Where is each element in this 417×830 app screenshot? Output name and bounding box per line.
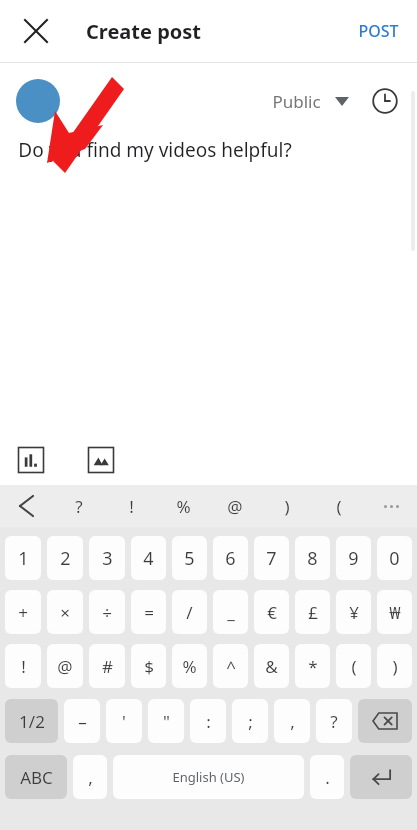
staticText: 4	[143, 546, 154, 571]
staticText: !	[21, 655, 26, 678]
button[interactable]: )	[261, 485, 313, 527]
staticText: ABC	[20, 766, 53, 789]
staticText: %	[176, 495, 191, 518]
staticText: )	[284, 495, 290, 518]
button[interactable]: =	[131, 590, 166, 634]
staticText: English (US)	[172, 768, 245, 786]
button[interactable]: ,	[274, 699, 310, 743]
button[interactable]: Backspace	[358, 699, 412, 743]
button[interactable]: 8	[295, 536, 330, 580]
staticText: 6	[225, 546, 236, 571]
button[interactable]: Schedule post	[365, 81, 405, 121]
button[interactable]: 5	[172, 536, 207, 580]
button[interactable]: *	[295, 644, 330, 688]
button[interactable]: "	[148, 699, 184, 743]
button[interactable]: )	[377, 644, 412, 688]
staticText: @	[57, 655, 73, 678]
button[interactable]: £	[295, 590, 330, 634]
staticText: !	[129, 495, 134, 518]
staticText: *	[308, 655, 318, 678]
button[interactable]: ÷	[89, 590, 125, 634]
staticText: )	[392, 655, 398, 678]
button[interactable]: ?	[316, 699, 352, 743]
button[interactable]: .	[310, 755, 344, 799]
staticText: €	[267, 601, 277, 624]
staticText: .	[325, 766, 330, 789]
staticText: 0	[389, 546, 400, 571]
button[interactable]: @	[209, 485, 261, 527]
button[interactable]: /	[172, 590, 207, 634]
button[interactable]: &	[254, 644, 289, 688]
staticText: '	[122, 710, 126, 733]
button[interactable]: More options	[365, 485, 417, 527]
staticText: ?	[75, 495, 83, 518]
staticText: ¥	[349, 601, 359, 624]
button[interactable]: 3	[89, 536, 125, 580]
staticText: $	[144, 655, 154, 678]
button[interactable]: 2	[47, 536, 83, 580]
button[interactable]: Enter	[350, 755, 412, 799]
button[interactable]: ^	[213, 644, 248, 688]
button[interactable]: ;	[232, 699, 268, 743]
staticText: 7	[266, 546, 277, 571]
staticText: 5	[184, 546, 195, 571]
button[interactable]: ₩	[377, 590, 412, 634]
staticText: –	[78, 710, 87, 733]
button[interactable]: 1/2	[5, 699, 58, 743]
staticText: _	[227, 601, 235, 624]
staticText: ^	[226, 655, 236, 678]
staticText: ₩	[389, 601, 401, 624]
button[interactable]: ¥	[336, 590, 371, 634]
button[interactable]: %	[157, 485, 209, 527]
button[interactable]: Previous suggestions	[0, 485, 53, 527]
staticText: ,	[88, 766, 93, 789]
button[interactable]: 7	[254, 536, 289, 580]
button[interactable]: 6	[213, 536, 248, 580]
button[interactable]: Profile picture	[16, 79, 60, 123]
button[interactable]: ?	[53, 485, 105, 527]
button[interactable]: '	[106, 699, 142, 743]
button[interactable]: (	[313, 485, 365, 527]
button[interactable]: ×	[47, 590, 83, 634]
staticText: ?	[330, 710, 338, 733]
button[interactable]: +	[5, 590, 41, 634]
staticText: 9	[348, 546, 359, 571]
button[interactable]: !	[105, 485, 157, 527]
staticText: +	[18, 601, 28, 624]
staticText: ×	[60, 601, 70, 624]
button[interactable]: ,	[73, 755, 107, 799]
button[interactable]: #	[89, 644, 125, 688]
button[interactable]: English (US)	[113, 755, 304, 799]
button[interactable]: 9	[336, 536, 371, 580]
staticText: :	[206, 710, 211, 733]
button[interactable]: 1	[5, 536, 41, 580]
button[interactable]: :	[190, 699, 226, 743]
button[interactable]: %	[172, 644, 207, 688]
button[interactable]: $	[131, 644, 166, 688]
button[interactable]: _	[213, 590, 248, 634]
staticText: 2	[60, 546, 71, 571]
button[interactable]: €	[254, 590, 289, 634]
staticText: =	[144, 601, 154, 624]
button[interactable]: 4	[131, 536, 166, 580]
button[interactable]: –	[64, 699, 100, 743]
staticText: @	[227, 495, 243, 518]
staticText: (	[351, 655, 357, 678]
button[interactable]: Close	[12, 7, 60, 55]
staticText: #	[102, 655, 113, 678]
button[interactable]: (	[336, 644, 371, 688]
button[interactable]: Add poll	[16, 445, 46, 475]
button[interactable]: POST	[346, 10, 411, 52]
button[interactable]: Add image	[86, 445, 116, 475]
staticText: £	[308, 601, 318, 624]
button[interactable]: !	[5, 644, 41, 688]
staticText: ;	[248, 710, 253, 733]
button[interactable]: ABC	[5, 755, 67, 799]
staticText: ,	[290, 710, 295, 733]
staticText: ÷	[102, 601, 112, 624]
button[interactable]: Public	[266, 82, 355, 121]
staticText: "	[163, 710, 170, 733]
button[interactable]: 0	[377, 536, 412, 580]
button[interactable]: @	[47, 644, 83, 688]
staticText: Do you find my videos helpful?	[18, 137, 292, 163]
